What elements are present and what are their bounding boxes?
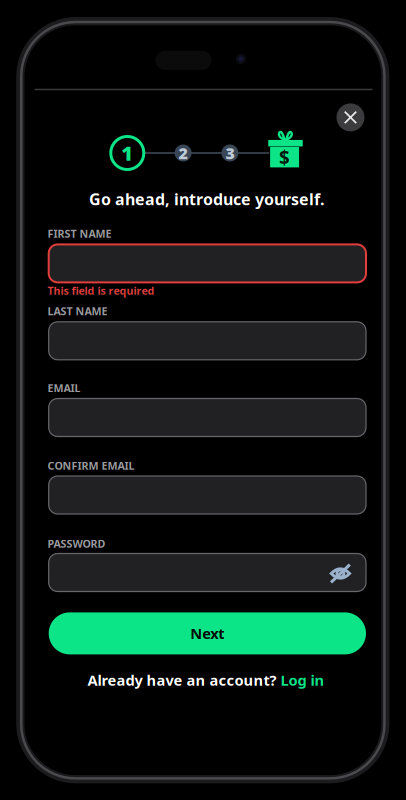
staticText: Go ahead, introduce yourself. [89,188,324,210]
staticText: PASSWORD [47,536,105,551]
staticText: Already have an account? [87,670,276,690]
staticText: This field is required [47,283,154,298]
button[interactable]: Next [49,612,366,654]
staticText: LAST NAME [47,304,107,318]
button[interactable]: Close [336,103,364,131]
staticText: FIRST NAME [47,226,111,241]
staticText: EMAIL [47,381,80,395]
staticText: Log in [280,670,324,690]
staticText: 3 [225,142,234,164]
staticText: Next [190,624,224,643]
staticText: 2 [179,142,188,164]
staticText: $ [279,145,290,170]
button[interactable]: Log in [280,670,324,690]
staticText: 1 [121,140,133,166]
staticText: CONFIRM EMAIL [47,458,134,473]
